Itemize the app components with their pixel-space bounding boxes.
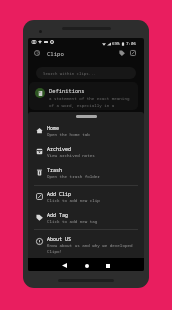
button[interactable]: New clip — [128, 48, 138, 58]
staticText: Open the home tab — [47, 132, 133, 138]
button[interactable]: Search within clips... — [36, 67, 136, 79]
staticText: Add Tag — [47, 212, 69, 219]
staticText: Definitions — [49, 87, 85, 94]
staticText: 7:06 — [126, 41, 137, 47]
button[interactable]: Add Clip — [28, 187, 144, 207]
staticText: View archived notes — [47, 153, 133, 159]
button[interactable]: Definitions — [29, 82, 138, 110]
button[interactable]: Back — [59, 260, 70, 271]
button[interactable]: Clipo — [32, 48, 42, 58]
button[interactable]: About US — [28, 232, 144, 252]
button[interactable]: Archived — [28, 142, 144, 162]
staticText: Click to add new clip — [47, 198, 133, 204]
staticText: Clipo — [47, 50, 64, 58]
staticText: About US — [47, 236, 72, 243]
button[interactable]: Home — [28, 121, 144, 141]
staticText: Search within clips... — [43, 71, 96, 76]
button[interactable]: Tags — [117, 48, 127, 58]
staticText: Know about us and why we developed Clipo… — [47, 243, 133, 254]
staticText: a statement of the exact meaning of a wo… — [49, 96, 130, 108]
button[interactable]: Add Tag — [28, 208, 144, 228]
staticText: Home — [47, 125, 60, 132]
staticText: Archived — [47, 146, 72, 153]
button[interactable]: Trash — [28, 163, 144, 183]
staticText: Click to add new tag — [47, 219, 133, 225]
button[interactable]: Home — [81, 260, 92, 271]
button[interactable]: Recents — [102, 260, 113, 271]
staticText: Open the trash folder — [47, 174, 133, 180]
staticText: Add Clip — [47, 191, 72, 198]
staticText: 69% — [112, 41, 120, 47]
staticText: Trash — [47, 167, 63, 174]
